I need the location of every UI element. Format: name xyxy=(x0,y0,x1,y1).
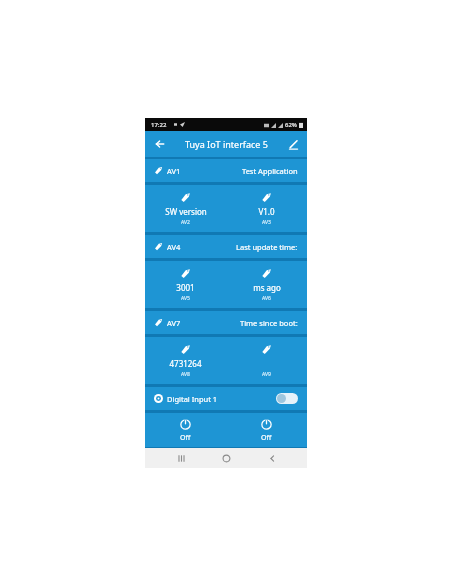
button[interactable]: 4731264 xyxy=(145,337,226,384)
staticText: Off xyxy=(261,433,272,443)
button[interactable]: AV9 xyxy=(226,337,307,384)
staticText: Test Application xyxy=(242,166,298,176)
staticText: 3001 xyxy=(176,282,195,293)
staticText: ms ago xyxy=(253,282,281,293)
button[interactable]: Back xyxy=(151,135,169,153)
staticText: AV5 xyxy=(181,295,190,302)
button[interactable]: Recents xyxy=(171,448,191,468)
staticText: Off xyxy=(180,433,191,443)
button[interactable]: V1.0 xyxy=(226,185,307,232)
staticText: Tuya IoT interface 5 xyxy=(185,138,268,150)
button[interactable]: AV1 xyxy=(145,159,307,182)
staticText: AV7 xyxy=(167,318,181,328)
staticText: Digital Input 1 xyxy=(167,394,218,404)
button[interactable]: SW version xyxy=(145,185,226,232)
staticText: SW version xyxy=(165,206,207,217)
button[interactable]: Toggle Digital Input 1 xyxy=(276,393,298,404)
staticText: AV9 xyxy=(262,371,271,378)
staticText: Last update time: xyxy=(236,242,298,252)
staticText: 4731264 xyxy=(169,358,202,369)
button[interactable]: Power Off xyxy=(145,413,226,447)
button[interactable]: ms ago xyxy=(226,261,307,308)
button[interactable]: Digital Input 1 xyxy=(145,387,307,410)
staticText: 17:22 xyxy=(151,121,167,129)
button[interactable]: Home xyxy=(216,448,236,468)
staticText: AV8 xyxy=(181,371,190,378)
staticText: Time since boot: xyxy=(240,318,298,328)
staticText: AV3 xyxy=(262,219,271,226)
button[interactable]: Edit xyxy=(284,135,302,153)
button[interactable]: 3001 xyxy=(145,261,226,308)
button[interactable]: AV4 xyxy=(145,235,307,258)
staticText: AV4 xyxy=(167,242,181,252)
staticText: 62% xyxy=(285,121,297,129)
staticText: AV1 xyxy=(167,166,181,176)
button[interactable]: Power Off xyxy=(226,413,307,447)
button[interactable]: Back xyxy=(262,448,282,468)
staticText: V1.0 xyxy=(258,206,275,217)
staticText: AV6 xyxy=(262,295,271,302)
button[interactable]: AV7 xyxy=(145,311,307,334)
staticText: AV2 xyxy=(181,219,190,226)
